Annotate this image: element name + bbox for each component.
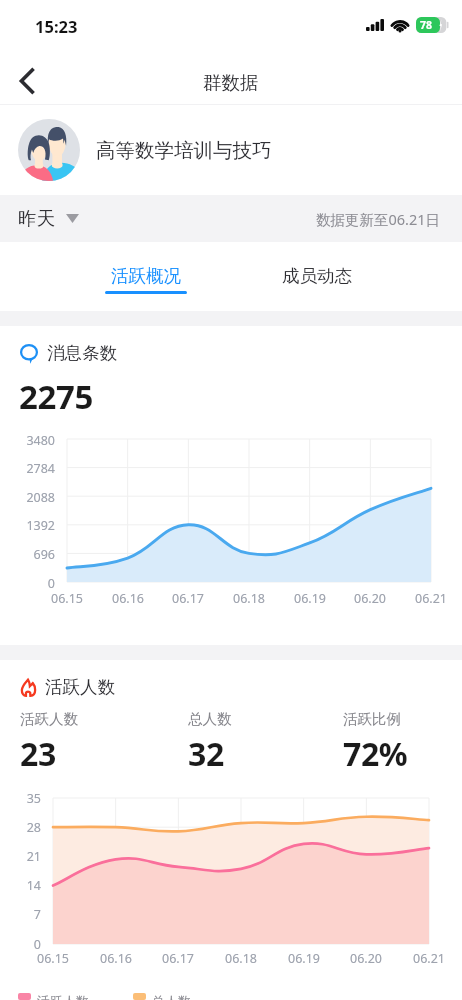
staticText: 活跃人数	[37, 993, 89, 1000]
staticText: 06.17	[161, 590, 215, 607]
staticText: 06.18	[222, 590, 276, 607]
button[interactable]: 高等数学培训与技巧	[0, 105, 462, 195]
staticText: 15:23	[35, 15, 78, 37]
staticText: 总人数	[188, 710, 232, 728]
staticText: 群数据	[203, 71, 259, 94]
staticText: 06.20	[343, 590, 397, 607]
staticText: 0	[0, 575, 55, 592]
staticText: 消息条数	[47, 342, 117, 364]
staticText: 活跃人数	[20, 710, 78, 728]
staticText: 06.21	[404, 590, 458, 607]
staticText: 21	[0, 848, 41, 865]
staticText: 32	[188, 732, 224, 776]
staticText: 06.21	[402, 950, 456, 967]
staticText: 3480	[0, 432, 55, 449]
staticText: 数据更新至06.21日	[316, 209, 441, 229]
staticText: 72%	[343, 732, 408, 776]
staticText: 成员动态	[282, 265, 352, 287]
staticText: 活跃概况	[111, 265, 181, 287]
staticText: 活跃比例	[343, 710, 401, 728]
staticText: 06.18	[214, 950, 268, 967]
button[interactable]: 昨天	[0, 207, 91, 230]
staticText: 06.17	[151, 950, 205, 967]
button[interactable]: 成员动态	[231, 242, 402, 311]
staticText: 0	[0, 936, 41, 953]
staticText: 06.19	[277, 950, 331, 967]
staticText: 2275	[19, 374, 93, 419]
staticText: 高等数学培训与技巧	[96, 138, 272, 163]
staticText: 06.19	[283, 590, 337, 607]
staticText: 2784	[0, 460, 55, 477]
staticText: 活跃人数	[45, 676, 115, 698]
staticText: 1392	[0, 517, 55, 534]
staticText: 78	[420, 18, 433, 32]
staticText: 06.20	[339, 950, 393, 967]
staticText: 06.15	[40, 590, 94, 607]
staticText: 35	[0, 790, 41, 807]
staticText: 06.15	[26, 950, 80, 967]
staticText: 06.16	[89, 950, 143, 967]
staticText: 14	[0, 877, 41, 894]
staticText: 06.16	[101, 590, 155, 607]
button[interactable]: Back	[0, 49, 54, 103]
button[interactable]: 活跃概况	[60, 242, 231, 311]
staticText: 2088	[0, 489, 55, 506]
staticText: 昨天	[18, 207, 55, 230]
staticText: 696	[0, 546, 55, 563]
staticText: 28	[0, 819, 41, 836]
staticText: 23	[20, 732, 56, 776]
staticText: 7	[0, 906, 41, 923]
staticText: 总人数	[152, 993, 191, 1000]
